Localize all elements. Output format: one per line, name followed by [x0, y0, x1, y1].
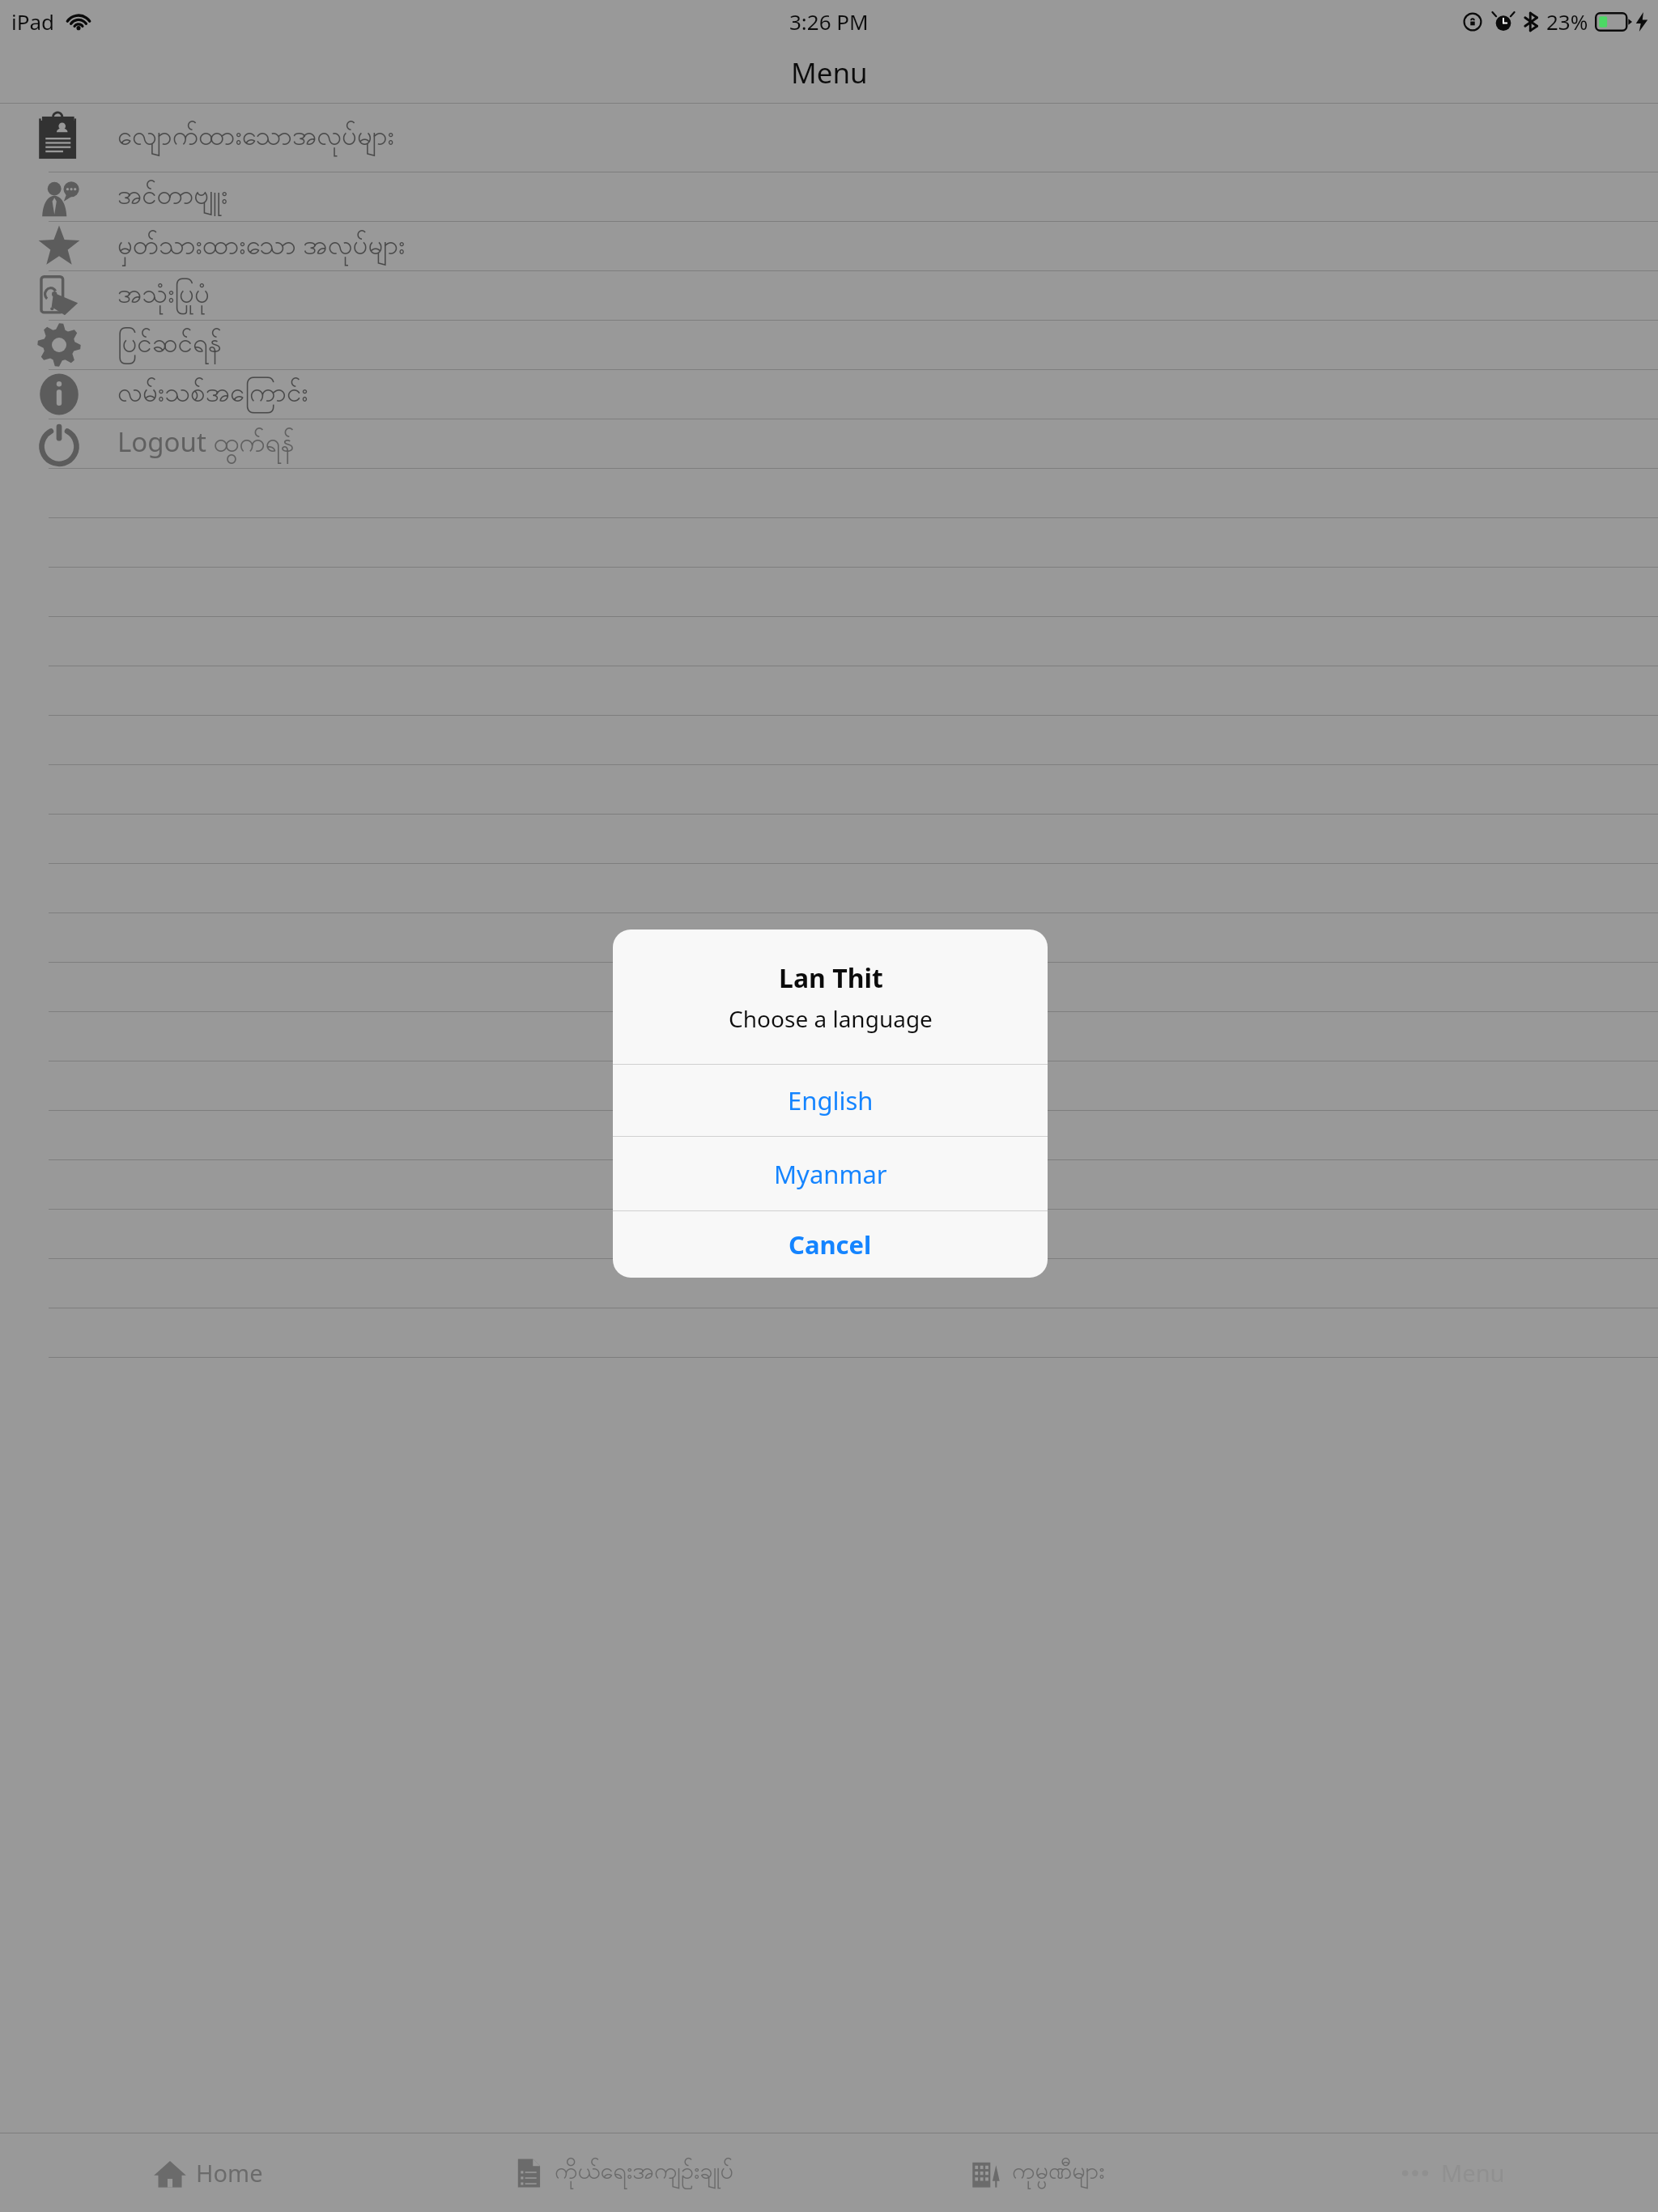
button[interactable]: Home: [0, 2133, 414, 2212]
button[interactable]: English: [613, 1065, 1048, 1136]
button[interactable]: မှတ်သားထားသော အလုပ်များ: [0, 222, 1658, 270]
button[interactable]: Cancel: [613, 1211, 1048, 1278]
button[interactable]: ပြင်ဆင်ရန်: [0, 321, 1658, 369]
staticText: အင်တာဗျူး: [117, 177, 228, 217]
staticText: iPad: [11, 7, 55, 36]
staticText: ကုမ္ပဏီများ: [1012, 2155, 1105, 2190]
button[interactable]: Myanmar: [613, 1137, 1048, 1210]
staticText: အသုံးပြုပုံ: [117, 276, 210, 316]
button[interactable]: လမ်းသစ်အကြောင်း: [0, 370, 1658, 419]
staticText: လမ်းသစ်အကြောင်း: [117, 375, 308, 415]
staticText: English: [788, 1083, 874, 1117]
staticText: Menu: [1441, 2157, 1505, 2189]
staticText: 3:26 PM: [789, 7, 869, 36]
button[interactable]: ကိုယ်ရေးအကျဉ်းချုပ်: [414, 2133, 829, 2212]
button[interactable]: Logout ထွက်ရန်: [0, 419, 1658, 468]
staticText: လျောက်ထားသောအလုပ်များ: [117, 118, 394, 158]
button[interactable]: ကုမ္ပဏီများ: [829, 2133, 1243, 2212]
staticText: Home: [196, 2157, 263, 2189]
button[interactable]: လျောက်ထားသောအလုပ်များ: [0, 104, 1658, 172]
staticText: ကိုယ်ရေးအကျဉ်းချုပ်: [555, 2155, 733, 2190]
staticText: မှတ်သားထားသော အလုပ်များ: [117, 226, 406, 267]
staticText: Lan Thit: [779, 960, 883, 996]
staticText: Choose a language: [729, 1003, 933, 1034]
staticText: Menu: [791, 53, 868, 92]
staticText: ပြင်ဆင်ရန်: [117, 325, 222, 365]
button[interactable]: အသုံးပြုပုံ: [0, 271, 1658, 320]
staticText: Myanmar: [774, 1157, 887, 1191]
staticText: 23%: [1546, 7, 1588, 36]
button[interactable]: အင်တာဗျူး: [0, 172, 1658, 221]
staticText: Logout ထွက်ရန်: [117, 423, 295, 465]
staticText: Cancel: [789, 1227, 872, 1261]
